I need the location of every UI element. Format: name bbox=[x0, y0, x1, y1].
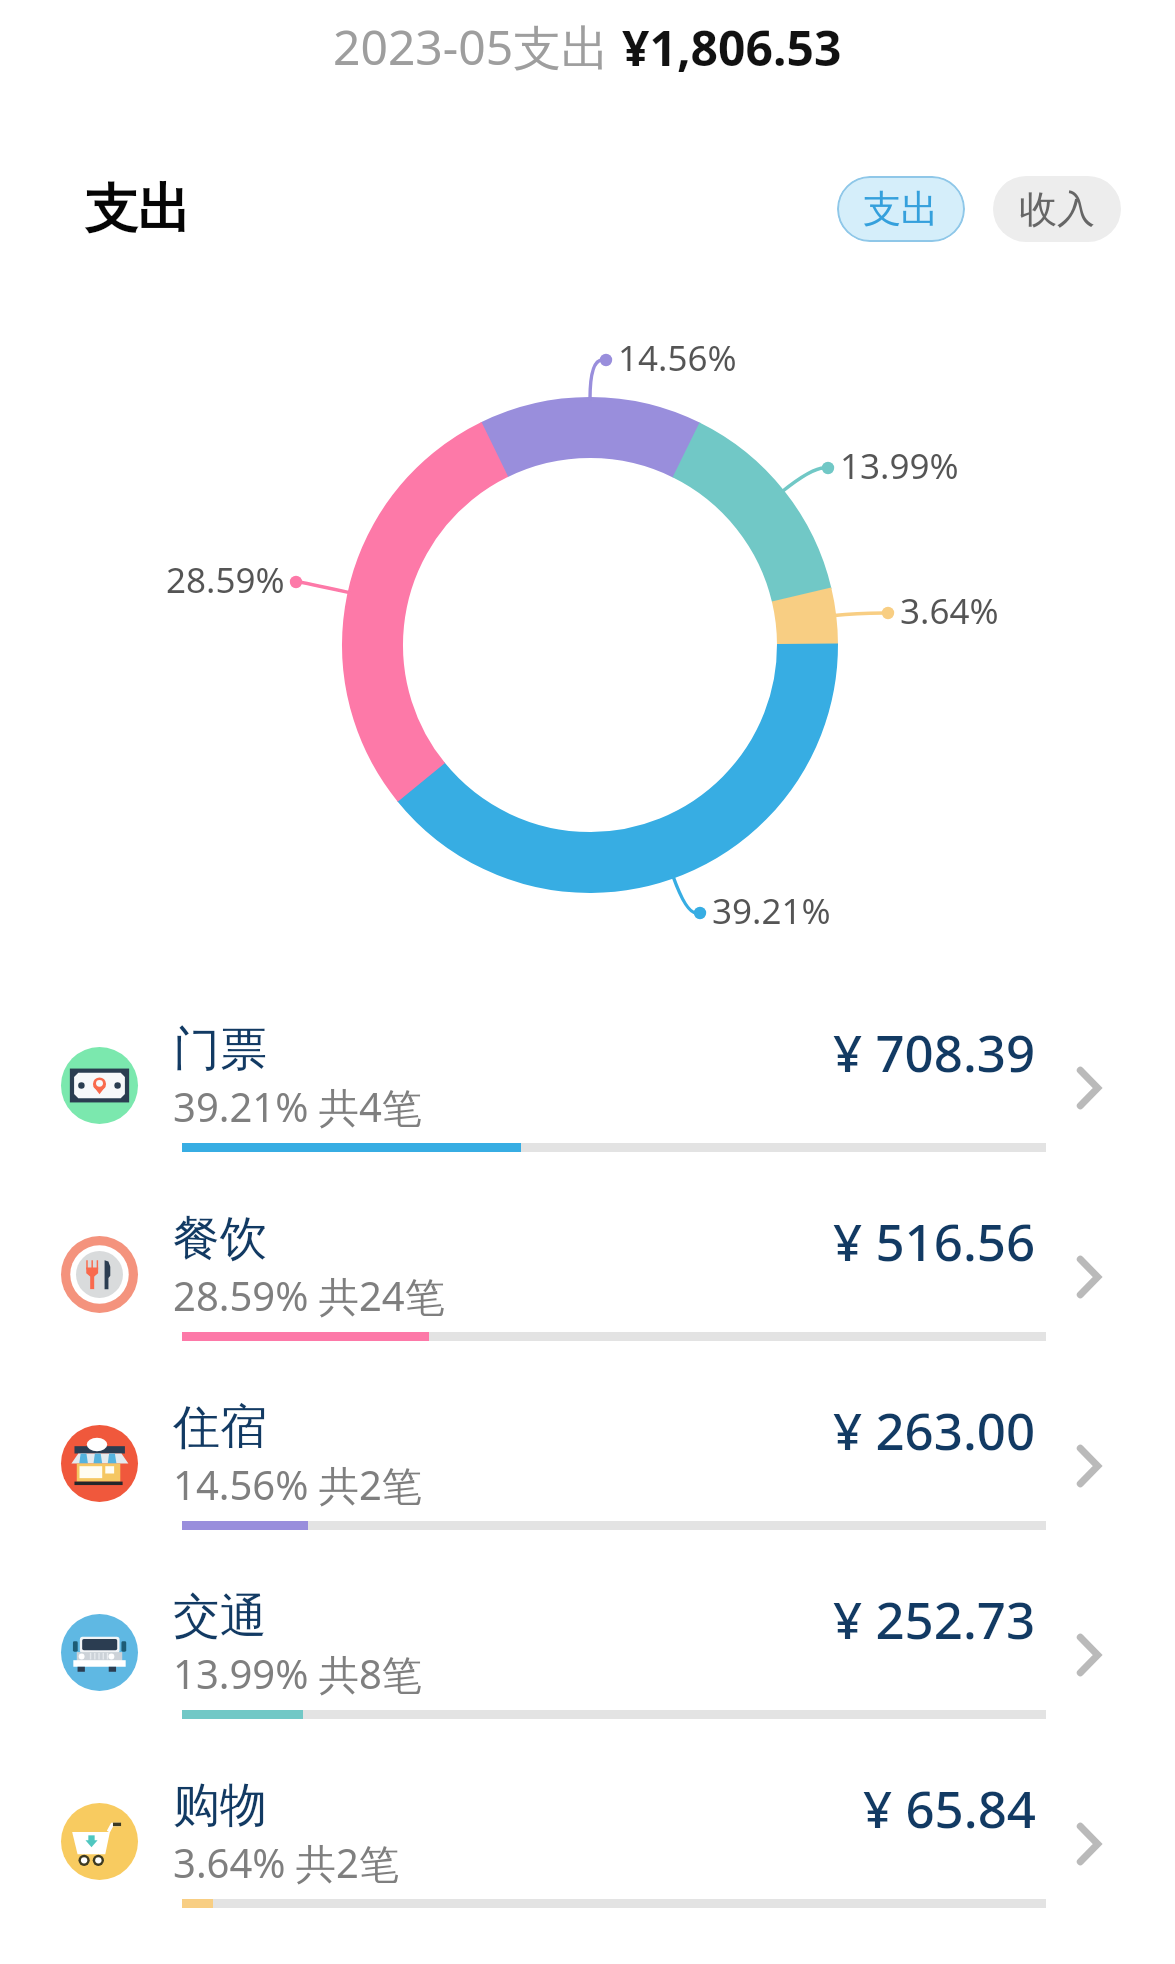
button[interactable]: 查看详情 bbox=[1059, 1814, 1119, 1874]
staticText: ¥ 263.00 bbox=[833, 1395, 1036, 1464]
staticText: 支出 bbox=[85, 176, 191, 243]
other: 住宿 bbox=[61, 1425, 138, 1502]
button[interactable]: 查看详情 bbox=[1059, 1436, 1119, 1496]
staticText: 门票 bbox=[173, 1020, 267, 1079]
other: 交通 bbox=[61, 1614, 138, 1691]
button[interactable]: 查看详情 bbox=[1059, 1247, 1119, 1307]
staticText: 13.99% bbox=[840, 442, 959, 490]
staticText: 14.56% 共2笔 bbox=[173, 1457, 422, 1512]
staticText: 2023-05支出 bbox=[333, 14, 622, 80]
staticText: 39.21% 共4笔 bbox=[173, 1079, 422, 1134]
staticText: ¥ 708.39 bbox=[833, 1017, 1036, 1086]
button[interactable]: 查看详情 bbox=[1059, 1058, 1119, 1118]
button[interactable]: 支出 bbox=[837, 176, 965, 242]
staticText: ¥ 516.56 bbox=[833, 1206, 1036, 1275]
staticText: ¥ 252.73 bbox=[833, 1584, 1036, 1653]
other: 购物 bbox=[61, 1803, 138, 1880]
button[interactable]: 门票 bbox=[0, 1004, 1175, 1193]
staticText: 交通 bbox=[173, 1587, 267, 1646]
staticText: ¥1,806.53 bbox=[622, 15, 842, 80]
staticText: 39.21% bbox=[712, 887, 831, 935]
button[interactable]: 交通 bbox=[0, 1571, 1175, 1760]
staticText: 支出 bbox=[863, 185, 939, 233]
button[interactable]: 查看详情 bbox=[1059, 1625, 1119, 1685]
staticText: 14.56% bbox=[618, 334, 737, 382]
button[interactable]: 餐饮 bbox=[0, 1193, 1175, 1382]
other: 门票 bbox=[61, 1047, 138, 1124]
staticText: 餐饮 bbox=[173, 1209, 267, 1268]
staticText: 购物 bbox=[173, 1776, 267, 1835]
button[interactable]: 购物 bbox=[0, 1760, 1175, 1949]
staticText: 收入 bbox=[1019, 185, 1095, 233]
staticText: ¥ 65.84 bbox=[863, 1773, 1036, 1842]
staticText: 13.99% 共8笔 bbox=[173, 1646, 422, 1701]
staticText: 3.64% 共2笔 bbox=[173, 1835, 399, 1890]
other: 餐饮 bbox=[61, 1236, 138, 1313]
button[interactable]: 收入 bbox=[993, 176, 1121, 242]
staticText: 28.59% bbox=[166, 556, 285, 604]
button[interactable]: 住宿 bbox=[0, 1382, 1175, 1571]
staticText: 住宿 bbox=[173, 1398, 267, 1457]
staticText: 3.64% bbox=[900, 587, 999, 635]
staticText: 28.59% 共24笔 bbox=[173, 1268, 445, 1323]
